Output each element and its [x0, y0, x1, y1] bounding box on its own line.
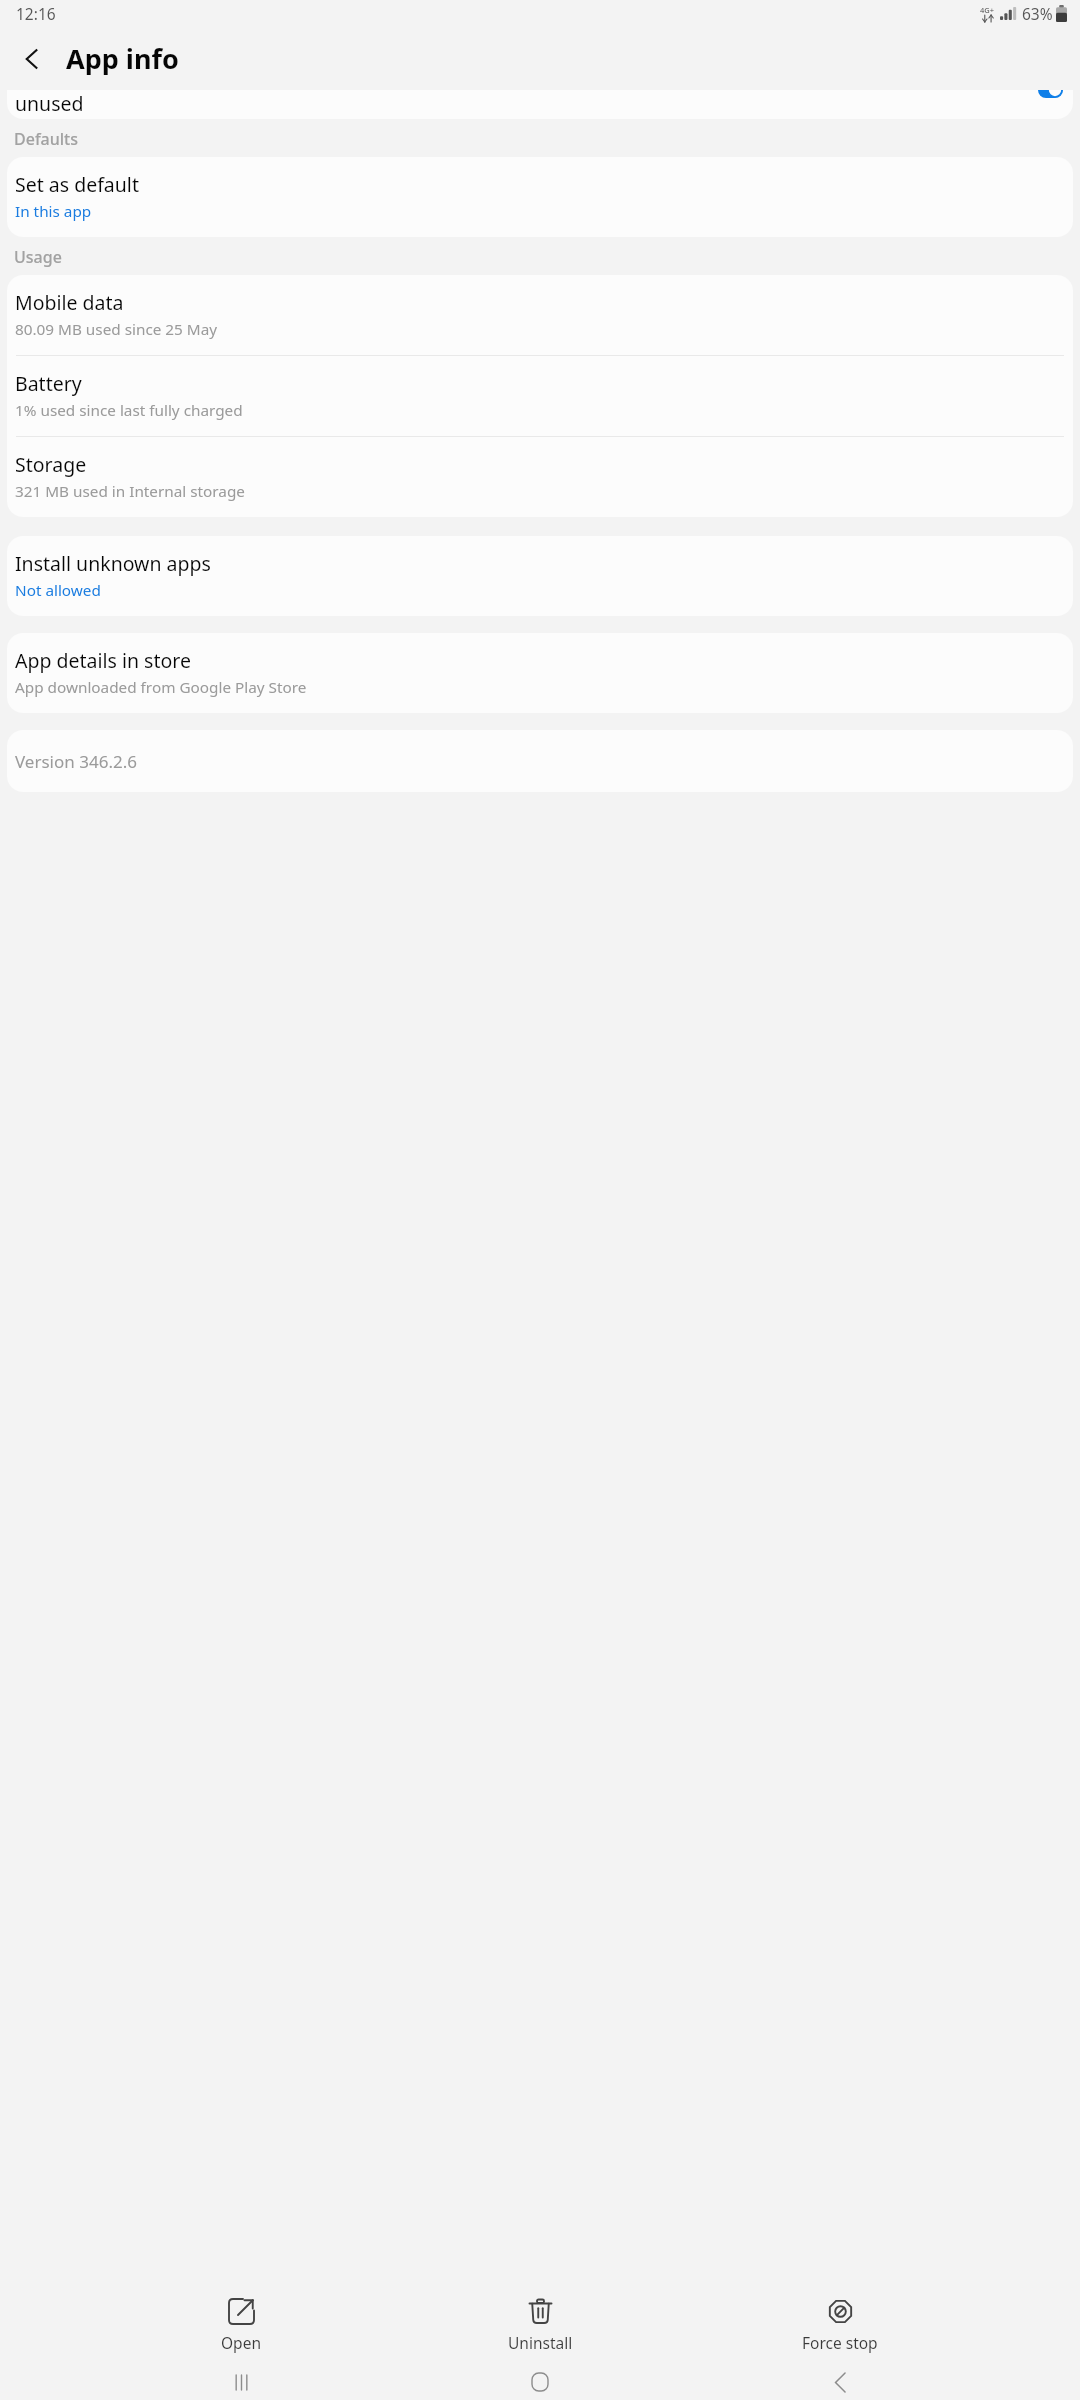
staticText: Not allowed [15, 580, 101, 601]
button[interactable]: Mobile data [7, 275, 1073, 355]
staticText: Mobile data [15, 289, 124, 316]
staticText: 63% [1022, 3, 1053, 24]
staticText: App info [66, 40, 179, 77]
button[interactable]: Back [8, 35, 56, 83]
button[interactable]: Open [182, 2295, 300, 2357]
staticText: 4G+ [980, 5, 995, 15]
staticText: Open [221, 2332, 261, 2353]
staticText: 1% used since last fully charged [15, 400, 243, 421]
staticText: Install unknown apps [15, 550, 211, 577]
staticText: In this app [15, 201, 92, 222]
staticText: unused [15, 90, 84, 117]
button[interactable]: Recent apps [182, 2364, 300, 2400]
button[interactable]: App details in store [7, 633, 1073, 713]
button[interactable]: Home [481, 2364, 599, 2400]
staticText: Storage [15, 451, 87, 478]
staticText: Version 346.2.6 [15, 750, 137, 773]
button[interactable]: Storage [7, 437, 1073, 517]
staticText: Defaults [14, 128, 79, 150]
staticText: Usage [14, 246, 62, 268]
staticText: 80.09 MB used since 25 May [15, 319, 218, 340]
button[interactable]: Uninstall [481, 2295, 599, 2357]
staticText: 321 MB used in Internal storage [15, 481, 245, 502]
staticText: Battery [15, 370, 82, 397]
button[interactable]: Back [781, 2364, 899, 2400]
staticText: 12:16 [16, 3, 56, 24]
button[interactable]: Battery [7, 356, 1073, 436]
button[interactable]: Version 346.2.6 [7, 730, 1073, 792]
staticText: App details in store [15, 647, 191, 674]
staticText: Set as default [15, 171, 139, 198]
button[interactable]: Install unknown apps [7, 536, 1073, 616]
staticText: App downloaded from Google Play Store [15, 677, 307, 698]
button[interactable]: unused [7, 90, 1073, 119]
button[interactable]: Force stop [781, 2295, 899, 2357]
staticText: Uninstall [508, 2332, 573, 2353]
button[interactable]: Set as default [7, 157, 1073, 237]
staticText: Force stop [802, 2332, 878, 2353]
